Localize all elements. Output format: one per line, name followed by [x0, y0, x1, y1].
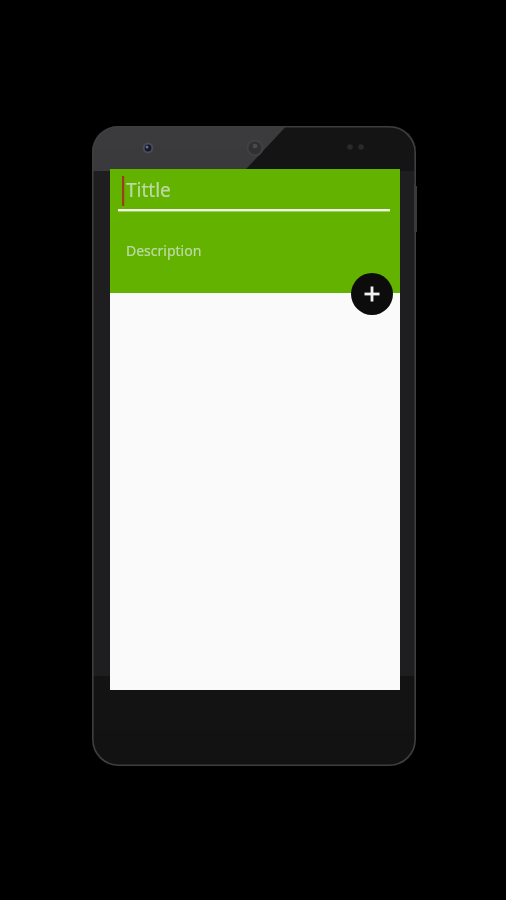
button[interactable]: Add note: [351, 273, 393, 315]
button[interactable]: Tittle: [118, 174, 390, 216]
button[interactable]: Description: [118, 237, 390, 275]
staticText: Description: [126, 241, 202, 260]
staticText: Tittle: [126, 177, 171, 203]
